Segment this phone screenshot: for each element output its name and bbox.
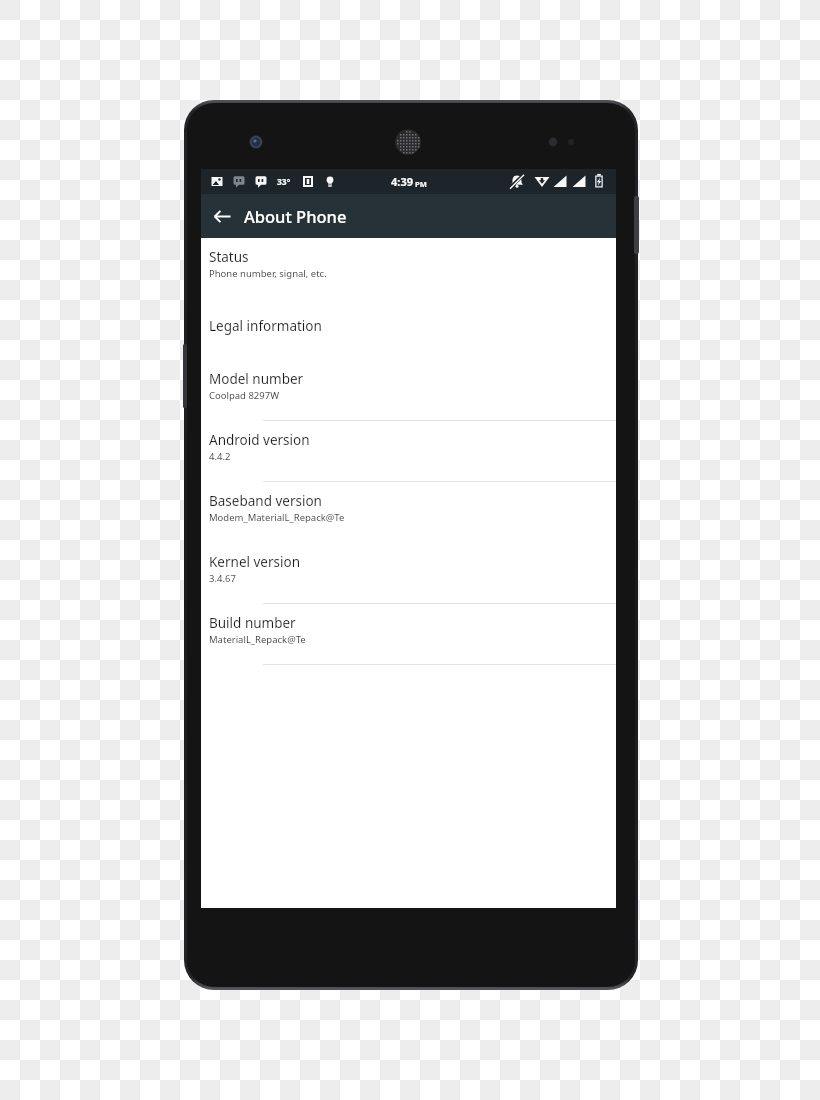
- staticText: Baseband version: [209, 492, 322, 510]
- button[interactable]: Kernel version: [201, 543, 616, 604]
- staticText: 4.4.2: [209, 450, 231, 463]
- button[interactable]: Build number: [201, 604, 616, 665]
- staticText: Model number: [209, 370, 304, 388]
- staticText: PM: [415, 179, 427, 189]
- staticText: Coolpad 8297W: [209, 389, 280, 402]
- button[interactable]: Legal information: [201, 307, 616, 360]
- staticText: Kernel version: [209, 553, 301, 571]
- staticText: 33°: [277, 176, 291, 188]
- button[interactable]: Back: [205, 199, 239, 233]
- staticText: Legal information: [209, 317, 322, 335]
- staticText: Status: [209, 248, 249, 266]
- staticText: MaterialL_Repack@Te: [209, 633, 306, 646]
- staticText: Phone number, signal, etc.: [209, 267, 327, 280]
- button[interactable]: Status: [201, 238, 616, 307]
- staticText: Android version: [209, 431, 310, 449]
- button[interactable]: Model number: [201, 360, 616, 421]
- button[interactable]: Baseband version: [201, 482, 616, 543]
- staticText: 4:39: [391, 174, 413, 189]
- staticText: Build number: [209, 614, 296, 632]
- button[interactable]: Android version: [201, 421, 616, 482]
- staticText: About Phone: [244, 205, 347, 227]
- staticText: Modem_MaterialL_Repack@Te: [209, 511, 345, 524]
- staticText: 3.4.67: [209, 572, 236, 585]
